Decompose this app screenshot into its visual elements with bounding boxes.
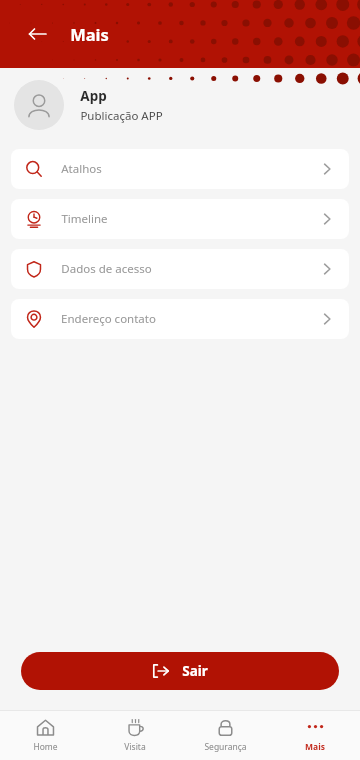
staticText: Visita (124, 741, 146, 753)
staticText: Mais (305, 741, 325, 753)
staticText: Segurança (204, 741, 247, 753)
button[interactable]: Timeline (11, 199, 349, 239)
staticText: Dados de acesso (61, 261, 152, 277)
staticText: App (80, 87, 107, 105)
button[interactable]: Visita (90, 711, 180, 760)
staticText: Mais (70, 23, 109, 45)
button[interactable]: Sair (21, 652, 339, 690)
button[interactable]: App (0, 68, 360, 142)
button[interactable]: Home (0, 711, 90, 760)
button[interactable]: Endereço contato (11, 299, 349, 339)
staticText: Publicação APP (80, 108, 163, 124)
button[interactable]: Segurança (180, 711, 270, 760)
button[interactable]: Atalhos (11, 149, 349, 189)
staticText: Home (33, 741, 58, 753)
button[interactable]: Back (22, 19, 52, 49)
staticText: Endereço contato (61, 311, 156, 327)
staticText: Timeline (61, 211, 108, 227)
staticText: Sair (182, 662, 208, 680)
staticText: Atalhos (61, 161, 102, 177)
button[interactable]: Mais (270, 711, 360, 760)
button[interactable]: Dados de acesso (11, 249, 349, 289)
